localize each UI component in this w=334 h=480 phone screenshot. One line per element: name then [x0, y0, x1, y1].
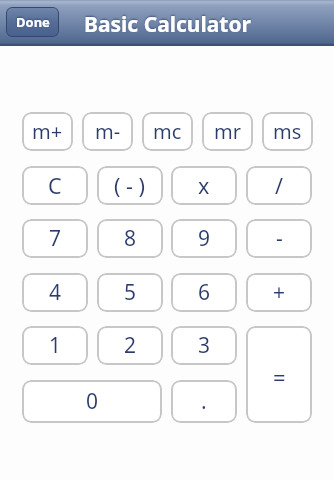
staticText: 3 [198, 331, 211, 360]
button[interactable]: 1 [22, 326, 88, 365]
staticText: ms [273, 118, 302, 145]
button[interactable]: x [171, 166, 237, 205]
button[interactable]: 8 [97, 219, 163, 258]
button[interactable]: m- [82, 112, 133, 151]
staticText: mc [153, 118, 182, 145]
button[interactable]: 5 [97, 273, 163, 312]
button[interactable]: / [246, 166, 312, 205]
button[interactable]: 2 [97, 326, 163, 365]
staticText: 6 [198, 278, 211, 307]
staticText: m+ [32, 118, 63, 145]
staticText: / [275, 171, 283, 200]
staticText: = [273, 362, 286, 392]
staticText: Done [16, 13, 50, 31]
button[interactable]: 3 [171, 326, 237, 365]
staticText: 4 [49, 278, 62, 307]
staticText: 5 [124, 278, 137, 307]
button[interactable]: mr [202, 112, 253, 151]
button[interactable]: m+ [22, 112, 73, 151]
button[interactable]: mc [142, 112, 193, 151]
button[interactable]: = [246, 326, 312, 423]
button[interactable]: . [171, 380, 237, 423]
button[interactable]: 6 [171, 273, 237, 312]
button[interactable]: 4 [22, 273, 88, 312]
staticText: + [273, 278, 286, 307]
button[interactable]: Done [6, 7, 59, 37]
staticText: 9 [198, 224, 211, 253]
staticText: 1 [49, 331, 62, 360]
button[interactable]: - [246, 219, 312, 258]
staticText: . [201, 387, 207, 416]
button[interactable]: + [246, 273, 312, 312]
staticText: - [276, 224, 283, 253]
button[interactable]: ms [262, 112, 313, 151]
staticText: 8 [124, 224, 137, 253]
staticText: 0 [86, 387, 99, 416]
staticText: ( - ) [114, 171, 146, 200]
button[interactable]: ( - ) [97, 166, 163, 205]
button[interactable]: 9 [171, 219, 237, 258]
button[interactable]: C [22, 166, 88, 205]
staticText: mr [214, 118, 241, 145]
staticText: x [198, 171, 210, 200]
button[interactable]: 0 [22, 380, 162, 423]
staticText: Basic Calculator [84, 10, 251, 39]
staticText: C [48, 171, 62, 200]
staticText: 7 [49, 224, 62, 253]
button[interactable]: 7 [22, 219, 88, 258]
staticText: 2 [124, 331, 137, 360]
staticText: m- [95, 118, 121, 145]
